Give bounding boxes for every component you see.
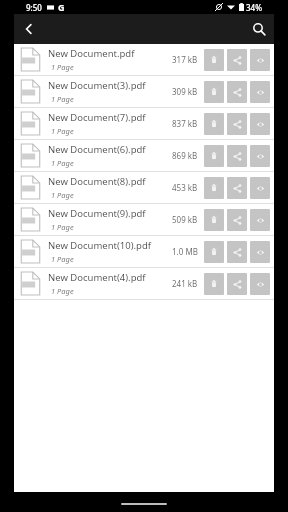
button[interactable]: New Document(6).pdf	[14, 140, 274, 171]
button[interactable]: Delete	[204, 209, 224, 231]
staticText: 837 kB	[172, 118, 198, 129]
staticText: 1 Page	[51, 126, 74, 136]
staticText: New Document(7).pdf	[48, 111, 146, 124]
button[interactable]: Delete	[204, 273, 224, 295]
button[interactable]: View	[250, 81, 270, 103]
staticText: 1 Page	[51, 158, 74, 168]
button[interactable]: New Document(9).pdf	[14, 204, 274, 235]
staticText: 309 kB	[172, 86, 198, 97]
staticText: 317 kB	[172, 54, 198, 65]
staticText: New Document(6).pdf	[48, 143, 146, 156]
button[interactable]: Delete	[204, 177, 224, 199]
button[interactable]: Share	[227, 113, 247, 135]
button[interactable]: New Document(4).pdf	[14, 268, 274, 299]
staticText: 453 kB	[172, 182, 198, 193]
button[interactable]: View	[250, 273, 270, 295]
button[interactable]: New Document(3).pdf	[14, 76, 274, 107]
staticText: 1 Page	[51, 94, 74, 104]
staticText: New Document(9).pdf	[48, 207, 146, 220]
button[interactable]: Share	[227, 177, 247, 199]
staticText: 1 Page	[51, 62, 74, 72]
staticText: New Document(3).pdf	[48, 79, 146, 92]
staticText: 1 Page	[51, 190, 74, 200]
button[interactable]: Search	[244, 14, 274, 44]
staticText: 241 kB	[172, 278, 198, 289]
button[interactable]: View	[250, 209, 270, 231]
button[interactable]: Share	[227, 81, 247, 103]
button[interactable]: Share	[227, 49, 247, 71]
staticText: 34%	[246, 2, 262, 13]
button[interactable]: Delete	[204, 241, 224, 263]
button[interactable]: Share	[227, 209, 247, 231]
staticText: 869 kB	[172, 150, 198, 161]
button[interactable]: View	[250, 49, 270, 71]
button[interactable]: Delete	[204, 145, 224, 167]
button[interactable]: View	[250, 145, 270, 167]
staticText: New Document(4).pdf	[48, 271, 146, 284]
button[interactable]: View	[250, 177, 270, 199]
button[interactable]: Share	[227, 145, 247, 167]
staticText: 509 kB	[172, 214, 198, 225]
staticText: G	[58, 1, 65, 13]
button[interactable]: New Document(7).pdf	[14, 108, 274, 139]
staticText: New Document(10).pdf	[48, 239, 152, 252]
staticText: 1 Page	[51, 222, 74, 232]
staticText: 1 Page	[51, 254, 74, 264]
button[interactable]: Delete	[204, 81, 224, 103]
staticText: 1.0 MB	[172, 246, 198, 257]
staticText: New Document.pdf	[48, 47, 135, 60]
staticText: 9:50	[26, 2, 42, 13]
button[interactable]: Share	[227, 241, 247, 263]
button[interactable]: Delete	[204, 49, 224, 71]
button[interactable]: View	[250, 113, 270, 135]
staticText: New Document(8).pdf	[48, 175, 146, 188]
button[interactable]: Share	[227, 273, 247, 295]
staticText: 1 Page	[51, 286, 74, 296]
button[interactable]: Back	[14, 14, 44, 44]
button[interactable]: New Document(10).pdf	[14, 236, 274, 267]
button[interactable]: Delete	[204, 113, 224, 135]
button[interactable]: New Document(8).pdf	[14, 172, 274, 203]
button[interactable]: New Document.pdf	[14, 44, 274, 75]
button[interactable]: View	[250, 241, 270, 263]
